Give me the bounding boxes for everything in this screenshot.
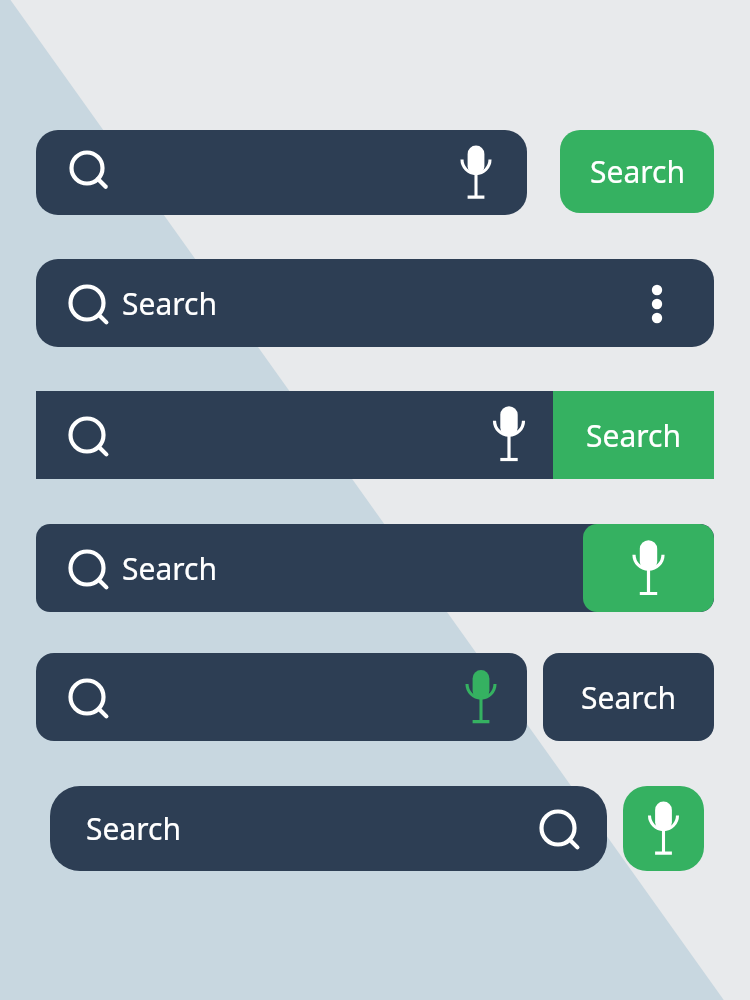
button[interactable]: Search	[36, 524, 714, 612]
staticText: Search	[586, 415, 681, 456]
button[interactable]	[36, 391, 553, 479]
button[interactable]: Search	[50, 786, 607, 871]
staticText: Search	[581, 677, 676, 718]
staticText: Search	[122, 283, 217, 324]
button[interactable]: Search	[553, 391, 714, 479]
staticText: Search	[590, 151, 685, 192]
button[interactable]	[36, 130, 527, 215]
staticText: Search	[86, 808, 181, 849]
button[interactable]: Search	[36, 259, 714, 347]
button[interactable]: Search	[543, 653, 714, 741]
button[interactable]	[36, 653, 527, 741]
button[interactable]: Voice search	[583, 524, 714, 612]
button[interactable]: Voice search	[623, 786, 704, 871]
staticText: Search	[122, 548, 217, 589]
button[interactable]: Search	[560, 130, 714, 213]
